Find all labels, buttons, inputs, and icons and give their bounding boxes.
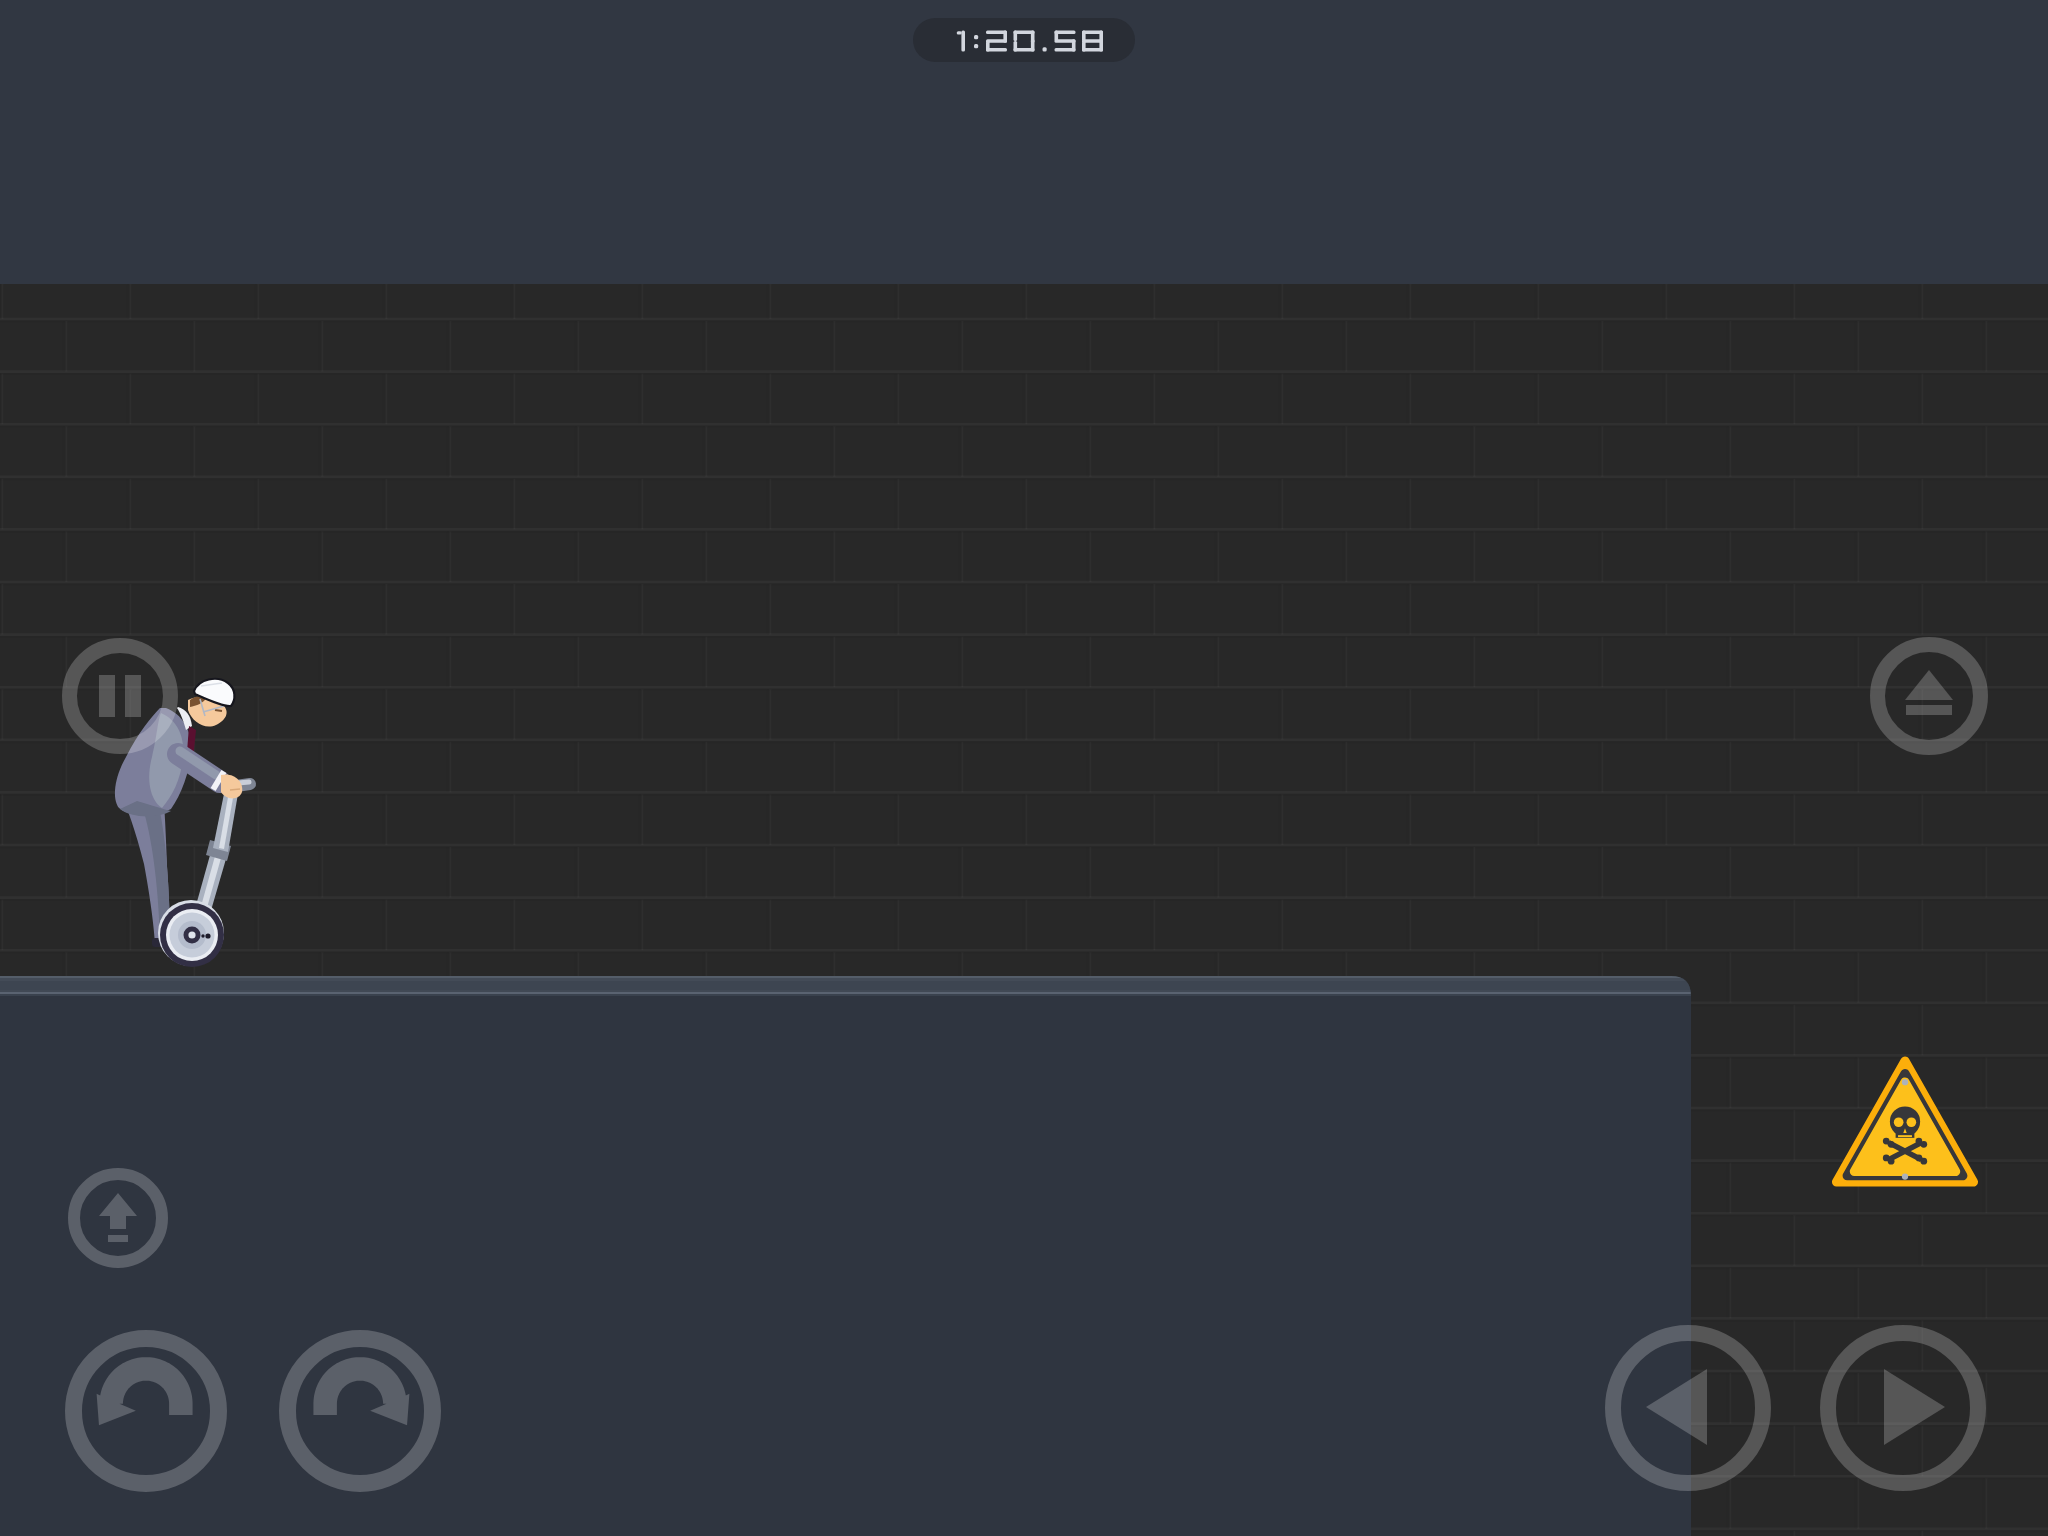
button[interactable]: Jump — [68, 1168, 168, 1268]
button[interactable]: Left — [1605, 1325, 1771, 1491]
button[interactable]: Right — [1820, 1325, 1986, 1491]
button[interactable]: Pause — [62, 638, 178, 754]
button[interactable]: Rotate right — [279, 1330, 441, 1492]
other: Time 1:20.58 — [913, 18, 1135, 62]
button[interactable]: Rotate left — [65, 1330, 227, 1492]
button[interactable]: Eject — [1870, 637, 1988, 755]
